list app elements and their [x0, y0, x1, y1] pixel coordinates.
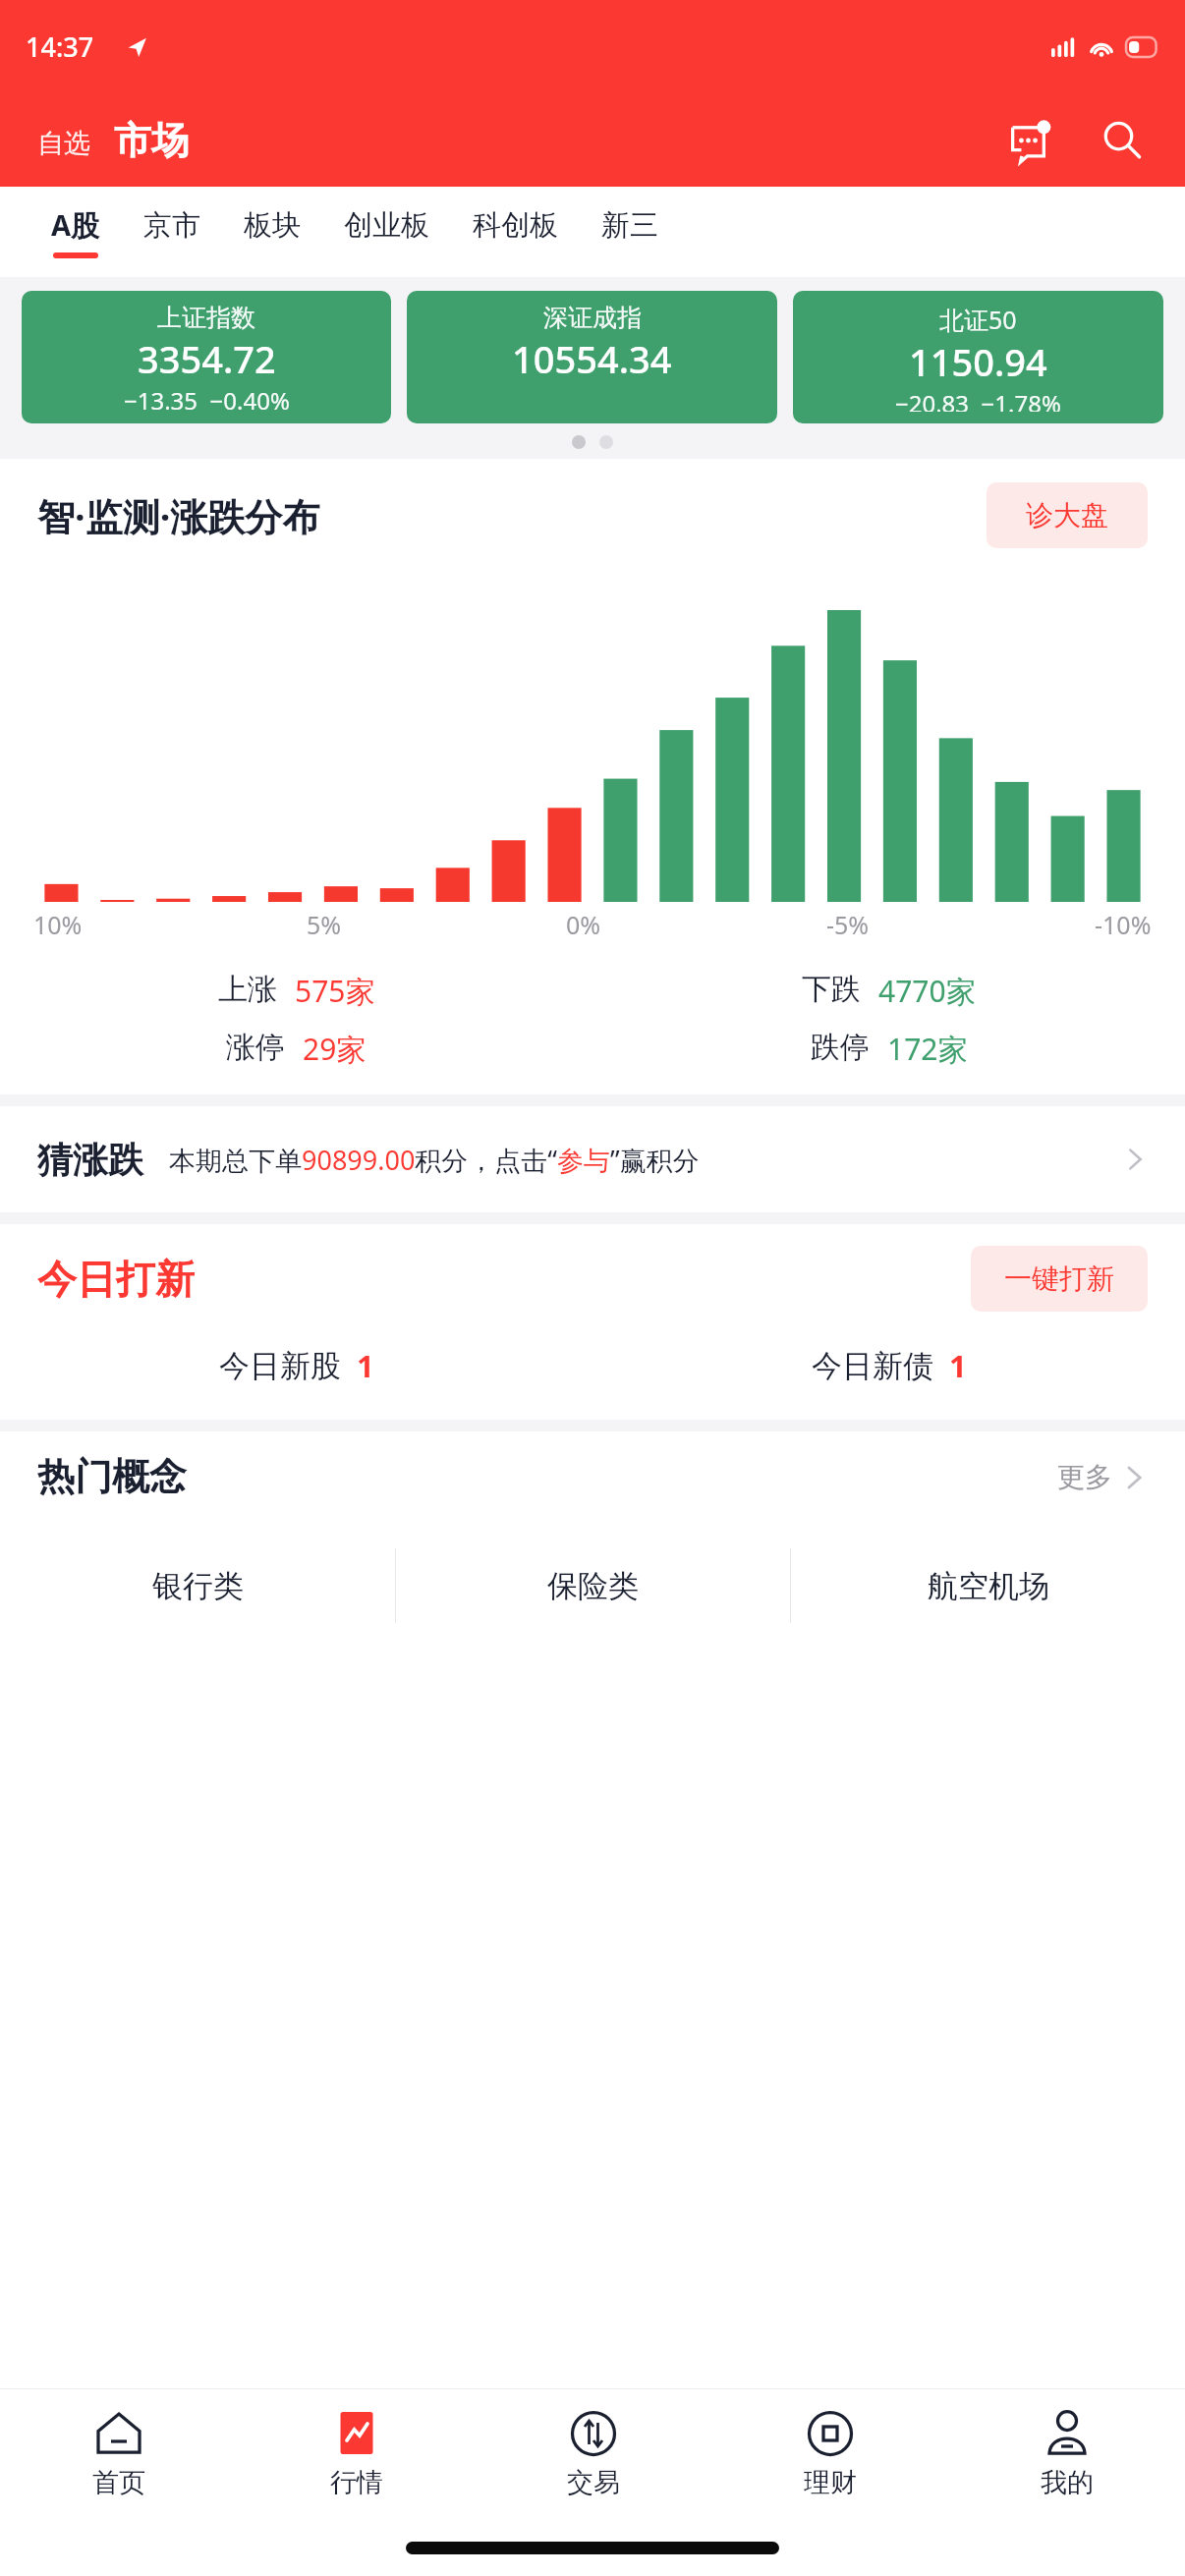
staticText: 深证成指: [543, 303, 642, 333]
staticText: 下跌: [802, 971, 861, 1008]
staticText: 172家: [887, 1029, 968, 1069]
button[interactable]: 交易: [475, 2389, 711, 2519]
button[interactable]: 行情: [238, 2389, 475, 2519]
staticText: 创业板: [344, 207, 429, 244]
button[interactable]: 一键打新: [971, 1246, 1148, 1312]
button[interactable]: 上证指数: [22, 291, 391, 423]
staticText: 本期总下单90899.00积分，点击“参与”赢积分: [169, 1142, 700, 1178]
staticText: 板块: [244, 207, 301, 244]
staticText: −20.83 −1.78%: [895, 387, 1061, 412]
staticText: 5%: [307, 908, 342, 941]
button[interactable]: 航空机场: [791, 1543, 1185, 1628]
staticText: 0%: [566, 908, 601, 941]
button[interactable]: 新三: [580, 207, 680, 257]
staticText: -10%: [1095, 908, 1152, 941]
button[interactable]: Search: [1095, 113, 1150, 168]
staticText: 10554.34: [512, 333, 672, 384]
staticText: 自选: [37, 127, 90, 160]
button[interactable]: 创业板: [322, 207, 451, 257]
staticText: 市场: [114, 117, 189, 164]
staticText: 北证50: [939, 303, 1017, 336]
button[interactable]: 猜涨跌: [0, 1106, 1185, 1212]
staticText: 4770家: [878, 971, 976, 1011]
button[interactable]: 首页: [0, 2389, 238, 2519]
button[interactable]: 市场: [114, 117, 189, 164]
button[interactable]: 自选: [37, 127, 90, 164]
staticText: 智·监测·涨跌分布: [37, 490, 320, 541]
button[interactable]: 北证50: [793, 291, 1163, 423]
button[interactable]: 保险类: [396, 1543, 790, 1628]
staticText: 行情: [330, 2466, 383, 2499]
staticText: 猜涨跌: [37, 1138, 143, 1182]
staticText: 京市: [143, 207, 200, 244]
staticText: 1: [949, 1345, 967, 1386]
staticText: 上涨: [218, 971, 277, 1008]
staticText: 更多: [1057, 1460, 1112, 1494]
button[interactable]: 更多: [1057, 1460, 1148, 1494]
staticText: 理财: [804, 2466, 857, 2499]
staticText: 今日打新: [37, 1255, 195, 1304]
button[interactable]: 理财: [711, 2389, 948, 2519]
staticText: 29家: [303, 1029, 367, 1069]
button[interactable]: 深证成指: [407, 291, 777, 423]
button[interactable]: 今日新股: [0, 1341, 592, 1390]
button[interactable]: 板块: [222, 207, 322, 257]
staticText: 诊大盘: [1026, 498, 1108, 532]
staticText: 跌停: [811, 1029, 870, 1066]
staticText: 575家: [295, 971, 375, 1011]
staticText: 今日新股: [219, 1347, 341, 1385]
staticText: 银行类: [152, 1567, 244, 1605]
button[interactable]: Messages: [1004, 113, 1059, 168]
button[interactable]: 今日新债: [592, 1341, 1185, 1390]
button[interactable]: A股: [29, 205, 122, 258]
staticText: -5%: [826, 908, 870, 941]
button[interactable]: 京市: [122, 207, 222, 257]
staticText: 新三: [601, 207, 658, 244]
staticText: 1: [357, 1345, 374, 1386]
button[interactable]: 银行类: [0, 1543, 395, 1628]
staticText: 交易: [567, 2466, 620, 2499]
staticText: A股: [51, 205, 100, 245]
staticText: 涨停: [226, 1029, 285, 1066]
staticText: 我的: [1041, 2466, 1094, 2499]
staticText: 今日新债: [812, 1347, 933, 1385]
staticText: 一键打新: [1004, 1261, 1114, 1296]
button[interactable]: 科创板: [451, 207, 580, 257]
staticText: 14:37: [26, 28, 94, 65]
staticText: 保险类: [547, 1567, 639, 1605]
staticText: 1150.94: [909, 336, 1047, 387]
staticText: 3354.72: [138, 333, 276, 384]
button[interactable]: 诊大盘: [987, 482, 1148, 548]
staticText: 科创板: [473, 207, 558, 244]
staticText: 上证指数: [157, 303, 255, 333]
staticText: 10%: [33, 908, 83, 941]
staticText: 航空机场: [928, 1567, 1049, 1605]
staticText: 首页: [92, 2466, 145, 2499]
staticText: 热门概念: [37, 1453, 187, 1500]
staticText: −13.35 −0.40%: [124, 384, 290, 412]
button[interactable]: 我的: [948, 2389, 1185, 2519]
